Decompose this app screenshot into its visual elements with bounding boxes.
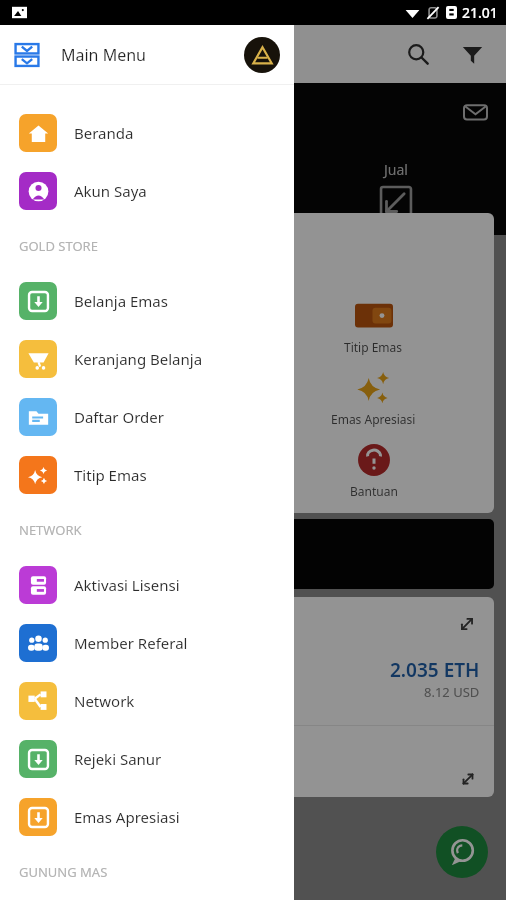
staticText: GUNUNG MAS [19, 863, 108, 881]
staticText: Harian [114, 411, 152, 427]
staticText: Aktivasi Lisensi [74, 575, 180, 595]
staticText: NETWORK [19, 521, 82, 539]
staticText: Titip Emas [74, 465, 147, 485]
button[interactable]: Titip Emas [0, 446, 294, 504]
staticText: Akun Saya [74, 181, 147, 201]
staticText: Keranjang Belanja [74, 349, 203, 369]
staticText: Daftar Order [74, 407, 164, 427]
button[interactable]: Berita [12, 441, 253, 499]
staticText: Beranda [74, 123, 134, 143]
button[interactable]: Daftar Order [0, 388, 294, 446]
button[interactable]: Member Referal [0, 614, 294, 672]
button[interactable]: Keranjang Belanja [0, 330, 294, 388]
staticText: Emas Apresiasi [331, 411, 416, 427]
button[interactable]: Rejeki Sanur [0, 730, 294, 788]
button[interactable]: WhatsApp [436, 826, 488, 878]
button[interactable]: Filter [450, 32, 494, 76]
staticText: Emas Apresiasi [74, 807, 180, 827]
button[interactable]: Titip Emas [253, 297, 494, 355]
button[interactable]: Messages [460, 97, 490, 127]
button[interactable]: Aktivasi Lisensi [0, 556, 294, 614]
staticText: Jual [384, 160, 408, 179]
staticText: Belanja Emas [74, 291, 168, 311]
button[interactable]: Emas Apresiasi [253, 369, 494, 427]
button[interactable]: Emas Apresiasi [0, 788, 294, 846]
button[interactable]: Bantuan [253, 441, 494, 499]
button[interactable]: Main Menu [0, 25, 294, 84]
button[interactable]: Akun Saya [0, 162, 294, 220]
button[interactable]: Beranda [0, 104, 294, 162]
staticText: GOLD STORE [19, 237, 98, 255]
button[interactable]: Harian [12, 369, 253, 427]
button[interactable]: Beli [66, 160, 286, 219]
staticText: Rejeki Sanur [74, 749, 162, 769]
staticText: Order [116, 339, 150, 355]
staticText: Titip Emas [344, 339, 403, 355]
button[interactable]: Order [12, 297, 253, 355]
staticText: Member Referal [74, 633, 188, 653]
staticText: Main Menu [61, 44, 146, 66]
button[interactable]: Network [0, 672, 294, 730]
staticText: 21.01 [462, 3, 498, 22]
button[interactable]: Jual [286, 160, 506, 219]
staticText: 8.12 USD [424, 683, 480, 701]
button[interactable]: Belanja Emas [0, 272, 294, 330]
staticText: Network [74, 691, 135, 711]
button[interactable]: Search [396, 32, 440, 76]
staticText: Kalkulator [26, 540, 127, 569]
staticText: 2.035 ETH [390, 657, 480, 683]
staticText: Bantuan [350, 483, 398, 499]
